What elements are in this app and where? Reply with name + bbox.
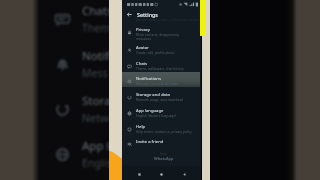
staticText: Help center, contact us, privacy policy (136, 130, 192, 134)
button[interactable]: Home (156, 169, 167, 180)
staticText: App language (136, 108, 164, 114)
staticText: Invite a friend (136, 139, 164, 145)
button[interactable]: Notifications (122, 76, 201, 89)
button[interactable]: Recent apps (134, 169, 145, 180)
button[interactable]: Privacy (122, 27, 201, 40)
staticText: Englis (82, 156, 112, 170)
staticText: Avatar (136, 45, 149, 51)
staticText: Mess (82, 66, 108, 80)
button[interactable]: Help (122, 124, 201, 137)
staticText: Network usage, auto-download (136, 98, 184, 102)
button[interactable]: Avatar (122, 45, 201, 58)
staticText: Stora (82, 93, 111, 109)
staticText: Help (136, 124, 146, 130)
staticText: Privacy (136, 27, 150, 33)
staticText: WhatsApp (154, 156, 174, 161)
staticText: Storage and data (136, 92, 170, 98)
button[interactable]: App language (122, 108, 201, 121)
staticText: Chats (136, 61, 148, 67)
staticText: Block contacts, disappearing messages (136, 33, 179, 40)
staticText: Theme, wallpapers, chat history (136, 67, 184, 71)
staticText: Account, privacy, chats, notifications, … (136, 18, 200, 22)
staticText: English (device's language) (136, 114, 177, 118)
staticText: Settings (137, 11, 158, 18)
button[interactable]: Invite a friend (122, 139, 201, 150)
staticText: Notifi (82, 48, 112, 64)
staticText: Create, edit, profile photo (136, 51, 175, 55)
staticText: Netwo (82, 111, 115, 125)
button[interactable]: Back (125, 10, 134, 19)
staticText: App l (82, 138, 110, 154)
button[interactable]: Back (179, 169, 190, 180)
staticText: from (160, 152, 167, 156)
staticText: Them (82, 21, 111, 35)
staticText: Message, group & call tones (136, 82, 179, 86)
staticText: Notifications (136, 76, 161, 82)
staticText: Chats (82, 3, 113, 19)
button[interactable]: Storage and data (122, 92, 201, 105)
button[interactable]: Chats (122, 61, 201, 74)
